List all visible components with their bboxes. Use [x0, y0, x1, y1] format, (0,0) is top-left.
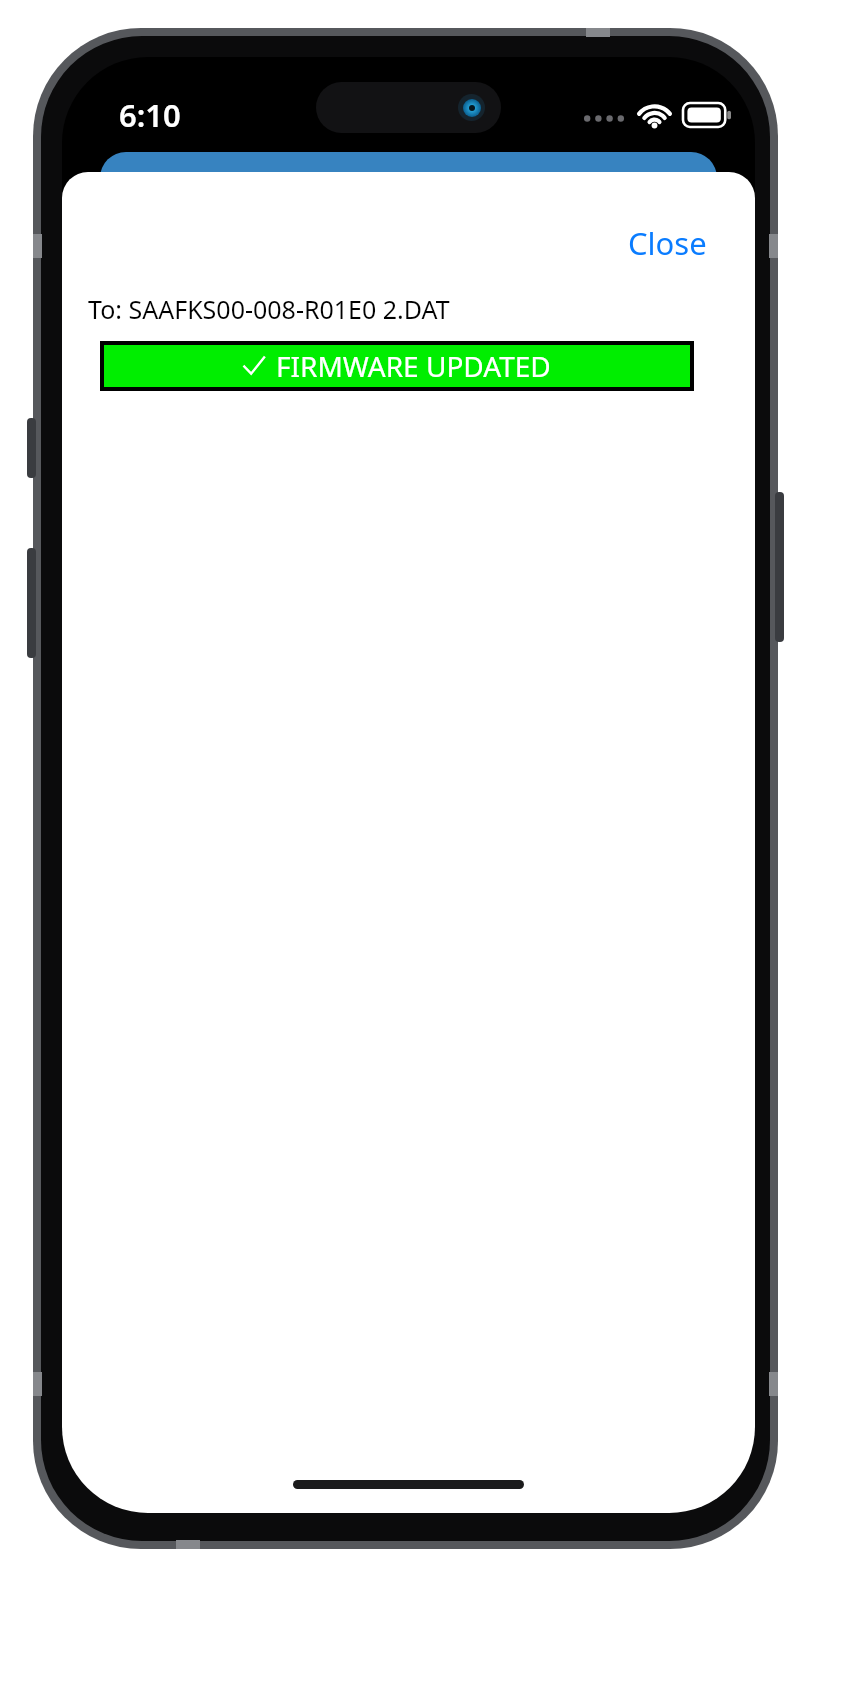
staticText: To: SAAFKS00-008-R01E0 2.DAT — [88, 292, 450, 326]
staticText: FIRMWARE UPDATED — [276, 347, 551, 385]
button[interactable]: Close — [618, 216, 717, 270]
staticText: Close — [628, 222, 707, 264]
staticText: 6:10 — [119, 94, 181, 136]
button[interactable]: Success — [104, 345, 690, 387]
other: Success — [243, 354, 265, 378]
